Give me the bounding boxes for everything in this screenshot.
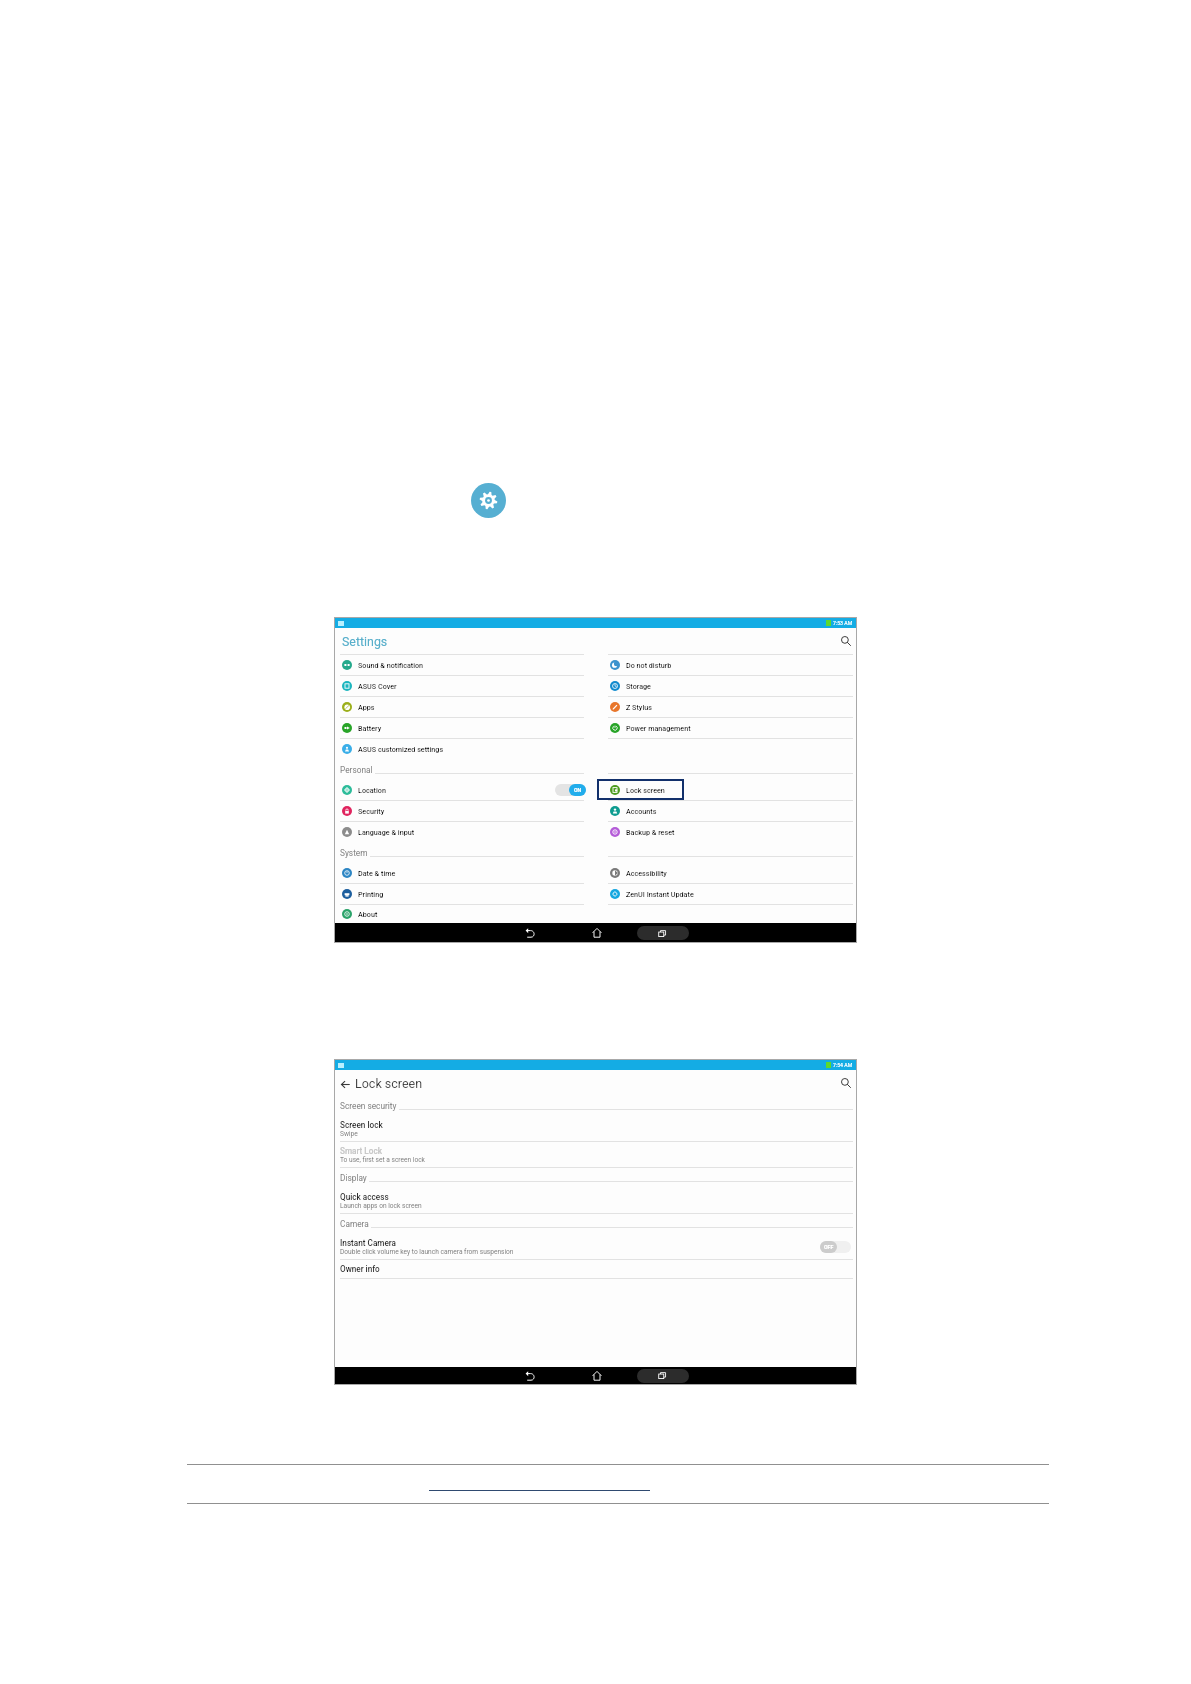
button[interactable]: Back (521, 1367, 539, 1384)
button[interactable]: Sound & notification (340, 655, 584, 676)
button[interactable]: Quick access (340, 1188, 853, 1214)
staticText: Settings (342, 634, 388, 649)
staticText: Language & input (358, 828, 415, 836)
button[interactable]: Recent apps icon (653, 1367, 671, 1384)
staticText: Owner info (340, 1264, 380, 1274)
button[interactable]: Recent apps icon (653, 924, 671, 942)
staticText: OFF (824, 1244, 834, 1250)
staticText: Screen security (340, 1101, 397, 1111)
button[interactable]: Search (838, 633, 854, 649)
button[interactable]: Accounts (608, 801, 853, 822)
button[interactable]: Power management (608, 718, 853, 739)
button[interactable]: Lock screen (597, 779, 684, 800)
button[interactable]: Home (588, 924, 606, 942)
button[interactable]: Settings (471, 483, 506, 518)
staticText: Smart Lock (340, 1146, 382, 1156)
button[interactable]: Apps (340, 697, 584, 718)
staticText: Accessibility (626, 869, 667, 877)
button[interactable]: Instant camera off (820, 1241, 851, 1253)
button[interactable]: Security (340, 801, 584, 822)
staticText: Double click volume key to launch camera… (340, 1248, 514, 1256)
staticText: Location (358, 786, 386, 794)
staticText: System (340, 848, 368, 858)
staticText: Storage (626, 682, 651, 690)
button[interactable]: Battery (340, 718, 584, 739)
staticText: Instant Camera (340, 1238, 396, 1248)
button[interactable]: Recent apps (637, 926, 689, 940)
button[interactable]: Back (521, 924, 539, 942)
button[interactable]: Location on (555, 784, 586, 796)
button[interactable]: Smart Lock (340, 1142, 853, 1168)
staticText: Backup & reset (626, 828, 675, 836)
staticText: Do not disturb (626, 661, 672, 669)
staticText: Swipe (340, 1130, 358, 1138)
staticText: Lock screen (355, 1076, 423, 1091)
staticText: Z Stylus (626, 703, 652, 711)
staticText: Printing (358, 890, 384, 898)
button[interactable]: Backup & reset (608, 822, 853, 843)
button[interactable]: Lock screen (608, 780, 853, 801)
button[interactable]: Instant Camera (340, 1234, 853, 1260)
button[interactable]: Language & input (340, 822, 584, 843)
button[interactable]: Printing (340, 884, 584, 905)
staticText: Apps (358, 703, 375, 711)
staticText: Personal (340, 765, 373, 775)
staticText: Accounts (626, 807, 657, 815)
staticText: Battery (358, 724, 382, 732)
button[interactable]: About (340, 905, 584, 923)
staticText: Screen lock (340, 1120, 383, 1130)
staticText: ASUS Cover (358, 682, 397, 690)
button[interactable]: ASUS Cover (340, 676, 584, 697)
button[interactable]: Accessibility (608, 863, 853, 884)
staticText: ZenUI Instant Update (626, 890, 694, 898)
staticText: ASUS customized settings (358, 745, 444, 753)
button[interactable]: Date & time (340, 863, 584, 884)
button[interactable]: Location (340, 780, 584, 801)
staticText: Date & time (358, 869, 396, 877)
button[interactable]: Storage (608, 676, 853, 697)
staticText: Display (340, 1173, 367, 1183)
button[interactable]: Home (588, 1367, 606, 1384)
button[interactable]: Recent apps (637, 1369, 689, 1383)
button[interactable]: Owner info (340, 1260, 853, 1279)
staticText: Quick access (340, 1192, 389, 1202)
button[interactable]: Do not disturb (608, 655, 853, 676)
button[interactable]: ASUS customized settings (340, 739, 584, 760)
staticText: Security (358, 807, 385, 815)
staticText: Sound & notification (358, 661, 424, 669)
staticText: 7:54 AM (833, 1062, 853, 1068)
button[interactable]: ZenUI Instant Update (608, 884, 853, 905)
button[interactable]: Screen lock (340, 1116, 853, 1142)
button[interactable]: Z Stylus (608, 697, 853, 718)
button[interactable]: Back (338, 1077, 352, 1091)
staticText: Power management (626, 724, 691, 732)
staticText: Camera (340, 1219, 369, 1229)
staticText: To use, first set a screen lock (340, 1156, 425, 1164)
staticText: Lock screen (626, 786, 665, 794)
button[interactable]: Search (838, 1075, 854, 1091)
staticText: ON (574, 787, 582, 793)
staticText: 7:53 AM (833, 620, 853, 626)
staticText: Launch apps on lock screen (340, 1202, 422, 1210)
staticText: About (358, 910, 378, 918)
